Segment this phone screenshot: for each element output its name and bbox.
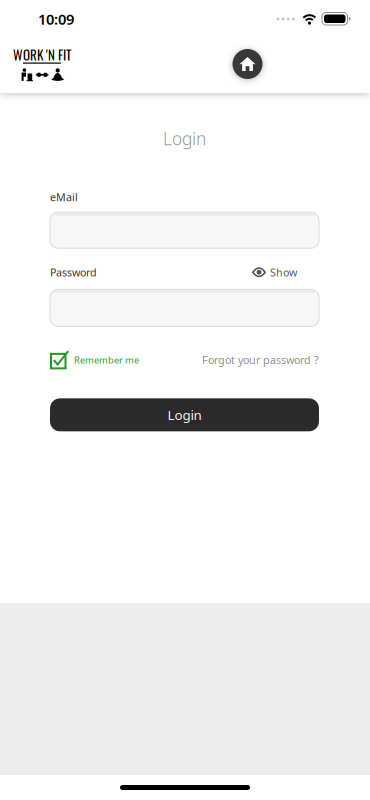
staticText: Login (163, 127, 206, 150)
staticText: eMail (50, 190, 78, 204)
staticText: Password (50, 265, 97, 279)
button[interactable]: Forgot your password ? (202, 353, 319, 367)
staticText: Show (270, 265, 297, 279)
staticText: Login (167, 406, 201, 424)
button[interactable]: Home (232, 49, 262, 79)
button[interactable]: Login (50, 398, 319, 431)
staticText: Forgot your password ? (202, 353, 319, 367)
button[interactable]: Password (50, 289, 319, 326)
button[interactable]: Remember me (50, 350, 139, 369)
staticText: Remember me (74, 354, 139, 366)
button[interactable]: eMail (50, 212, 319, 248)
button[interactable]: Show password (252, 265, 297, 279)
staticText: WORK 'N FIT (13, 45, 71, 64)
staticText: 10:09 (38, 9, 74, 29)
